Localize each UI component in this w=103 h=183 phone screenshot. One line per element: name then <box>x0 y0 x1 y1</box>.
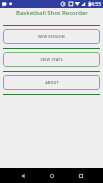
staticText: 4:55 <box>91 0 102 7</box>
button[interactable]: Home <box>37 168 66 183</box>
button[interactable]: Back <box>8 168 37 183</box>
button[interactable]: ABOUT <box>3 75 100 90</box>
staticText: ABOUT <box>45 80 59 85</box>
button[interactable]: VIEW STATS <box>3 52 100 67</box>
staticText: Basketball Shot Recorder <box>16 9 88 17</box>
staticText: VIEW STATS <box>40 57 63 62</box>
button[interactable]: NEW SESSION <box>3 29 100 44</box>
staticText: NEW SESSION <box>38 34 65 39</box>
button[interactable]: Recent apps <box>66 168 95 183</box>
